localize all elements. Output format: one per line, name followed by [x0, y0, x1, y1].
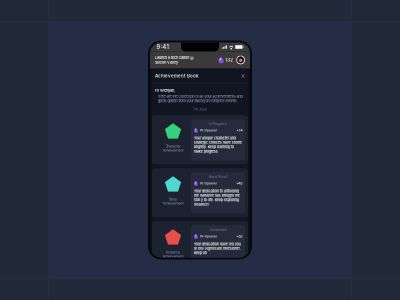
- staticText: Instance: [166, 250, 180, 254]
- staticText: 132: [225, 57, 233, 63]
- staticText: Willpower: [200, 181, 217, 185]
- staticText: Story: [169, 197, 177, 201]
- staticText: Your unique character and strategic choi…: [194, 136, 242, 154]
- staticText: Character: [165, 144, 180, 148]
- staticText: Willpower: [200, 128, 217, 132]
- staticText: +32: [236, 234, 242, 238]
- staticText: Willpower: [200, 234, 217, 238]
- staticText: Achievement Book: [155, 73, 199, 79]
- staticText: Here are the collection of all your achi…: [157, 94, 242, 103]
- staticText: Your dedication to unfolding the narrati…: [194, 189, 240, 207]
- staticText: Achievement: [162, 148, 183, 152]
- staticText: Achievement: [162, 254, 183, 258]
- staticText: Launch a tech career @: [155, 55, 194, 60]
- staticText: +14: [236, 128, 242, 132]
- button[interactable]: Close: [241, 74, 245, 78]
- staticText: In Progress: [209, 122, 227, 126]
- button[interactable]: Story: [152, 168, 248, 217]
- staticText: 9:41: [156, 44, 168, 50]
- button[interactable]: Profile: [236, 56, 245, 64]
- staticText: Completed: [209, 228, 226, 232]
- button[interactable]: Character: [152, 115, 248, 164]
- staticText: Hi Wenyan,: [155, 88, 175, 93]
- button[interactable]: Instance: [152, 221, 248, 270]
- staticText: +43: [236, 181, 242, 185]
- staticText: Silicon Valley: [155, 60, 178, 65]
- staticText: 7th June: [193, 107, 207, 111]
- staticText: Achievement: [162, 201, 183, 205]
- staticText: Your dedication have led you to this sig…: [194, 242, 241, 255]
- staticText: Brand New!: [208, 175, 227, 179]
- button[interactable]: 132: [218, 56, 233, 63]
